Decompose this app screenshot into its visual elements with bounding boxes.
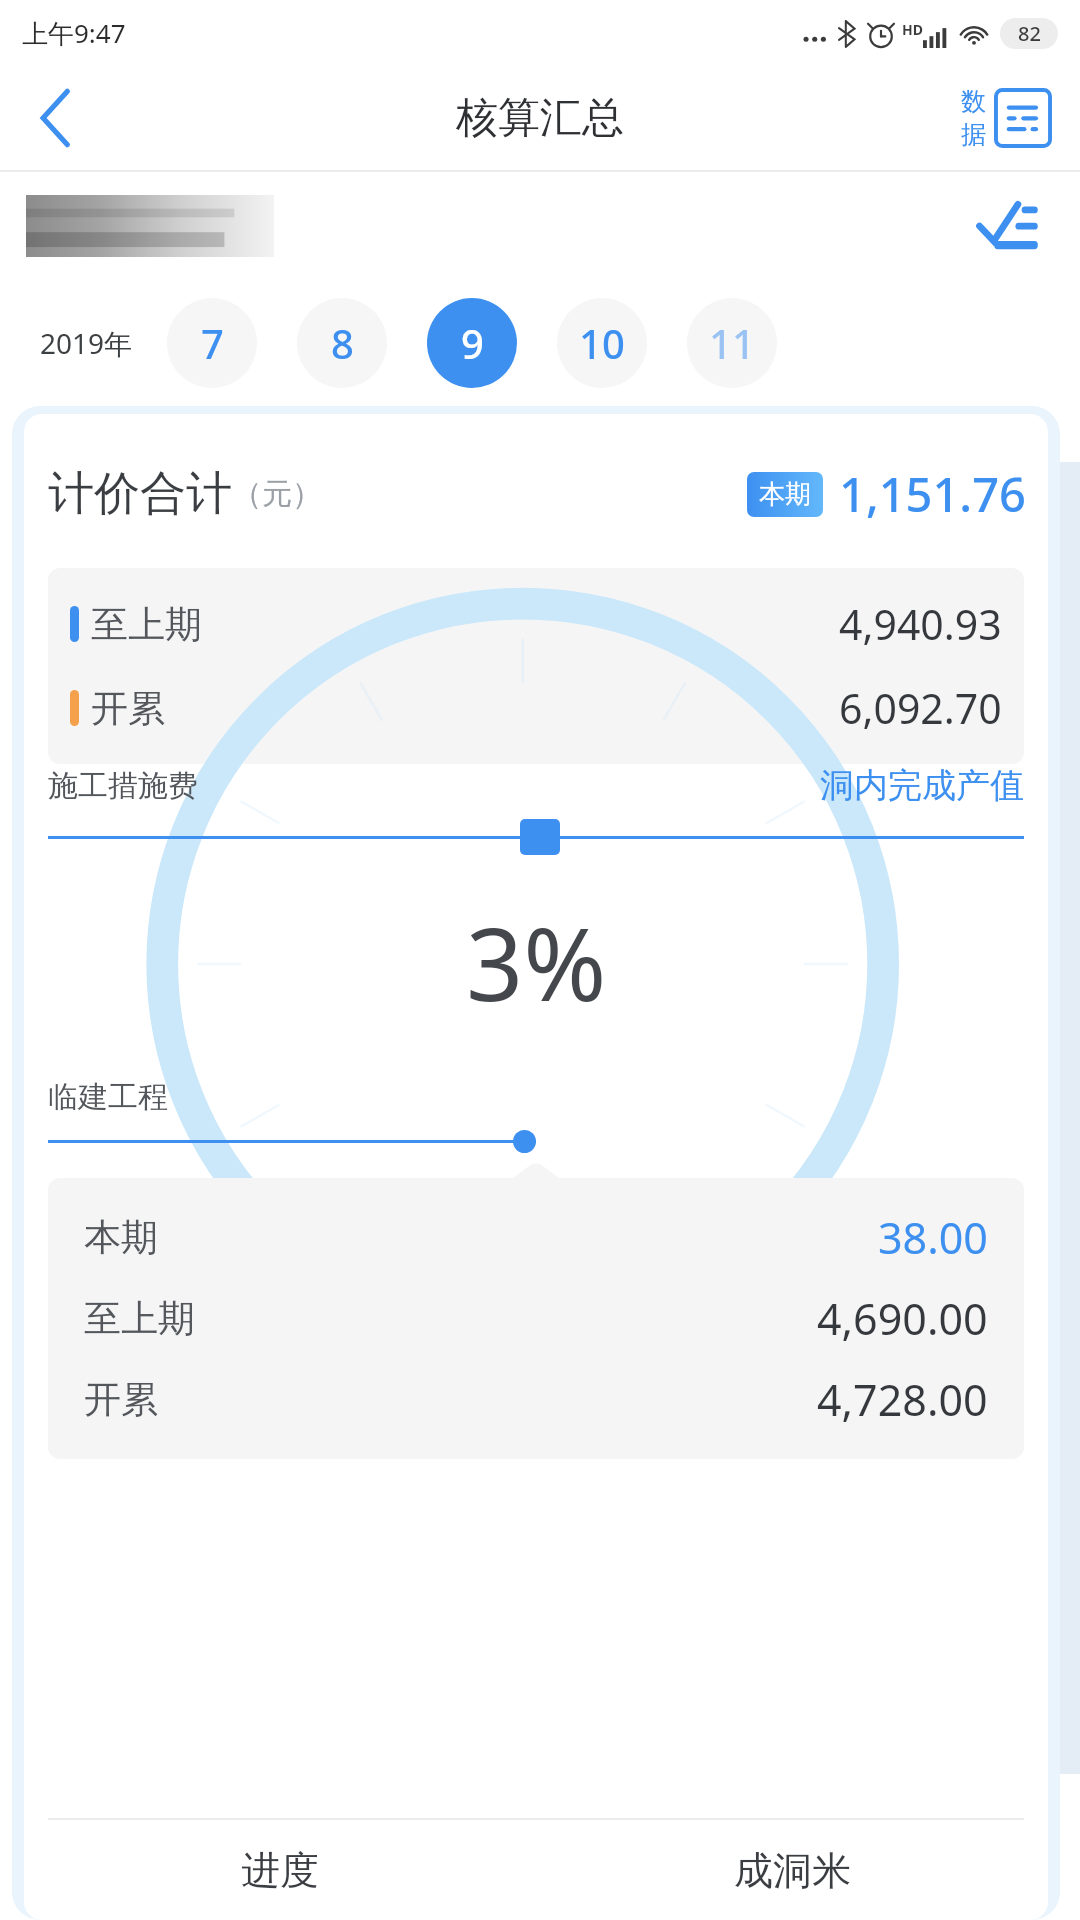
button[interactable]: 8	[297, 298, 387, 388]
button[interactable]: Checklist	[962, 180, 1054, 272]
button[interactable]: 成洞米	[536, 1820, 1048, 1920]
staticText: 进度	[241, 1846, 319, 1895]
staticText: 4,690.00	[817, 1289, 988, 1348]
button[interactable]: 9	[427, 298, 517, 388]
staticText: 至上期	[84, 1295, 195, 1342]
button[interactable]: 10	[557, 298, 647, 388]
staticText: 10	[579, 316, 625, 370]
button[interactable]: Data	[961, 86, 1052, 150]
staticText: 4,940.93	[839, 596, 1002, 652]
staticText: 8	[331, 316, 354, 370]
staticText: 3%	[466, 894, 607, 1030]
staticText: 6,092.70	[839, 680, 1002, 736]
button[interactable]: 7	[167, 298, 257, 388]
staticText: 计价合计	[48, 465, 232, 523]
staticText: （元）	[232, 475, 322, 513]
staticText: 洞内完成产值	[820, 764, 1024, 807]
staticText: 核算汇总	[456, 92, 624, 145]
button[interactable]	[26, 195, 274, 257]
staticText: 11	[709, 316, 755, 370]
staticText: 1,151.76	[839, 462, 1026, 526]
staticText: 据	[961, 119, 986, 150]
staticText: 成洞米	[734, 1846, 851, 1895]
staticText: 开累	[91, 685, 165, 732]
staticText: 上午9:47	[22, 15, 126, 51]
staticText: 82	[1018, 20, 1041, 47]
staticText: 2019年	[40, 324, 133, 362]
button[interactable]: 开累	[70, 680, 1002, 736]
staticText: 本期	[84, 1214, 158, 1261]
staticText: 数	[961, 86, 986, 117]
staticText: 9	[461, 316, 484, 370]
button[interactable]	[48, 819, 1024, 855]
button[interactable]: Back	[0, 66, 112, 170]
button[interactable]: 开累	[84, 1370, 988, 1429]
staticText: 开累	[84, 1376, 158, 1423]
button[interactable]: 至上期	[84, 1289, 988, 1348]
button[interactable]	[48, 1128, 1024, 1154]
staticText: 本期	[759, 478, 811, 511]
staticText: 38.00	[878, 1208, 988, 1267]
button[interactable]: 11	[687, 298, 777, 388]
button[interactable]: 至上期	[70, 596, 1002, 652]
staticText: 7	[201, 316, 224, 370]
button[interactable]: 本期	[84, 1208, 988, 1267]
staticText: 4,728.00	[817, 1370, 988, 1429]
staticText: HD	[902, 20, 923, 39]
staticText: 施工措施费	[48, 767, 198, 805]
staticText: 至上期	[91, 601, 202, 648]
staticText: 临建工程	[48, 1078, 168, 1116]
button[interactable]: 进度	[24, 1820, 536, 1920]
